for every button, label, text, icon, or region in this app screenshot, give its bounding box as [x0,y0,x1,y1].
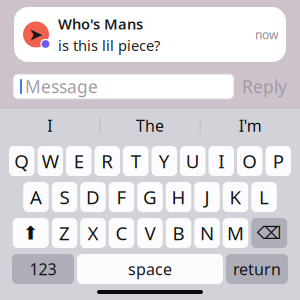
staticText: The [136,115,164,136]
staticText: Who's Mans [58,14,143,33]
staticText: U [186,149,200,173]
button[interactable]: P [265,146,291,176]
button[interactable]: Space [77,254,223,284]
button[interactable]: Reply [242,75,287,98]
staticText: E [74,149,84,173]
staticText: G [143,185,157,209]
staticText: A [30,185,42,209]
staticText: C [115,221,127,245]
button[interactable]: L [251,182,277,212]
staticText: ⬆ [23,222,39,244]
staticText: I [218,149,224,173]
staticText: space [128,258,172,280]
button[interactable]: Delete [251,218,287,248]
button[interactable]: O [237,146,262,176]
button[interactable]: H [166,182,191,212]
staticText: V [144,221,155,245]
button[interactable]: T [123,146,148,176]
staticText: O [242,149,257,173]
staticText: return [233,258,281,280]
staticText: 123 [29,258,56,280]
staticText: Y [159,149,170,173]
staticText: L [259,185,269,209]
button[interactable]: E [66,146,91,176]
staticText: ⌫ [257,223,282,243]
staticText: J [204,185,209,209]
button[interactable]: I [0,109,99,142]
staticText: P [273,149,284,173]
staticText: Message [25,75,98,98]
staticText: X [87,221,98,245]
staticText: M [227,221,244,245]
staticText: B [172,221,184,245]
staticText: W [42,149,59,173]
staticText: Reply [242,75,287,98]
staticText: F [116,185,126,209]
staticText: T [131,149,141,173]
button[interactable]: M [223,218,248,248]
button[interactable]: B [166,218,191,248]
staticText: ➤ [28,25,43,44]
button[interactable]: C [109,218,134,248]
staticText: D [86,185,100,209]
staticText: Z [59,221,70,245]
staticText: I'm [239,115,262,136]
button[interactable]: Y [151,146,177,176]
button[interactable]: The [100,109,200,142]
button[interactable]: Numbers [12,254,74,284]
staticText: now [255,26,278,42]
button[interactable]: K [223,182,248,212]
staticText: is this lil piece? [58,35,160,55]
button[interactable]: Shift [13,218,49,248]
button[interactable]: I [208,146,234,176]
button[interactable]: Q [9,146,34,176]
button[interactable]: Return [226,254,288,284]
staticText: K [229,185,241,209]
button[interactable]: J [194,182,220,212]
button[interactable]: G [137,182,163,212]
staticText: Q [14,149,29,173]
button[interactable]: A [23,182,49,212]
button[interactable]: X [80,218,106,248]
button[interactable]: Message [13,74,234,99]
staticText: S [59,185,69,209]
button[interactable]: U [180,146,205,176]
button[interactable]: R [94,146,120,176]
staticText: N [200,221,214,245]
staticText: I [47,115,52,136]
button[interactable]: F [109,182,134,212]
button[interactable]: I'm [201,109,300,142]
button[interactable]: W [37,146,63,176]
button[interactable]: Z [52,218,77,248]
button[interactable]: V [137,218,163,248]
button[interactable]: S [52,182,77,212]
button[interactable]: D [80,182,106,212]
staticText: R [101,149,113,173]
staticText: H [171,185,185,209]
button[interactable]: N [194,218,220,248]
button[interactable]: ➤ [14,7,286,62]
